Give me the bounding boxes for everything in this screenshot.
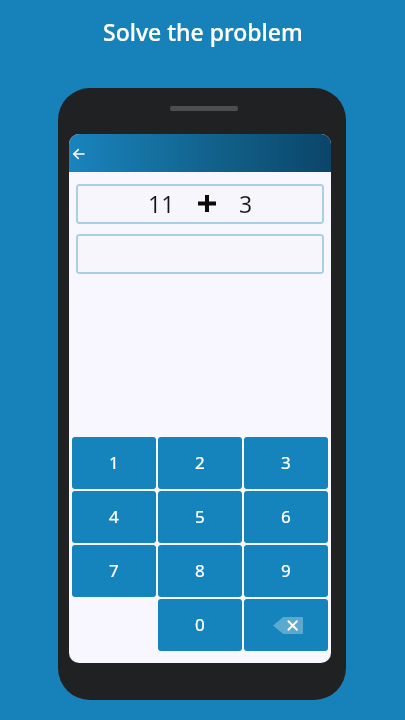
button[interactable] [76, 234, 324, 274]
staticText: 3 [239, 188, 253, 219]
button[interactable]: 6 [244, 491, 328, 543]
staticText: 11 [148, 188, 175, 219]
button[interactable]: 5 [158, 491, 242, 543]
button[interactable]: 9 [244, 545, 328, 597]
button[interactable]: 0 [158, 599, 242, 651]
button[interactable]: 11 [76, 184, 324, 224]
button[interactable]: 7 [72, 545, 156, 597]
staticText: 3 [281, 451, 291, 474]
staticText: 6 [281, 505, 291, 528]
staticText: 0 [195, 613, 205, 636]
staticText: 8 [195, 559, 205, 582]
staticText: 4 [109, 505, 119, 528]
staticText: 7 [109, 559, 119, 582]
button[interactable]: 2 [158, 437, 242, 489]
staticText: 1 [109, 451, 119, 474]
staticText: 5 [195, 505, 205, 528]
button[interactable]: 4 [72, 491, 156, 543]
staticText: 2 [195, 451, 205, 474]
button[interactable]: 1 [72, 437, 156, 489]
staticText: 9 [281, 559, 291, 582]
button[interactable]: 8 [158, 545, 242, 597]
button[interactable]: Back [69, 140, 92, 168]
staticText: Solve the problem [103, 16, 303, 47]
button[interactable]: Backspace [244, 599, 328, 651]
button[interactable]: 3 [244, 437, 328, 489]
